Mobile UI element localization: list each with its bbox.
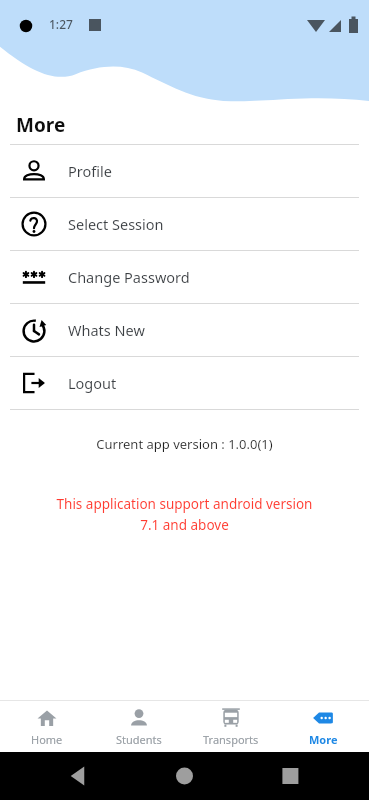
staticText: Select Session <box>68 214 164 234</box>
staticText: Whats New <box>68 320 145 340</box>
button[interactable]: More <box>277 701 369 752</box>
staticText: This application support android version… <box>16 495 353 534</box>
staticText: Logout <box>68 373 117 393</box>
staticText: Profile <box>68 161 112 181</box>
staticText: Current app version : 1.0.0(1) <box>0 435 369 453</box>
button[interactable]: Home <box>0 701 93 752</box>
staticText: 1:27 <box>49 16 73 32</box>
staticText: Students <box>116 732 162 747</box>
button[interactable]: Students <box>93 701 185 752</box>
staticText: Change Password <box>68 267 190 287</box>
staticText: Home <box>31 732 63 747</box>
staticText: Transports <box>203 732 259 747</box>
button[interactable]: Select Session <box>0 198 369 250</box>
staticText: More <box>16 112 66 138</box>
button[interactable]: Profile <box>0 145 369 197</box>
button[interactable]: Whats New <box>0 304 369 356</box>
staticText: More <box>309 732 338 747</box>
button[interactable]: Transports <box>185 701 277 752</box>
button[interactable]: Change Password <box>0 251 369 303</box>
button[interactable]: Logout <box>0 357 369 409</box>
